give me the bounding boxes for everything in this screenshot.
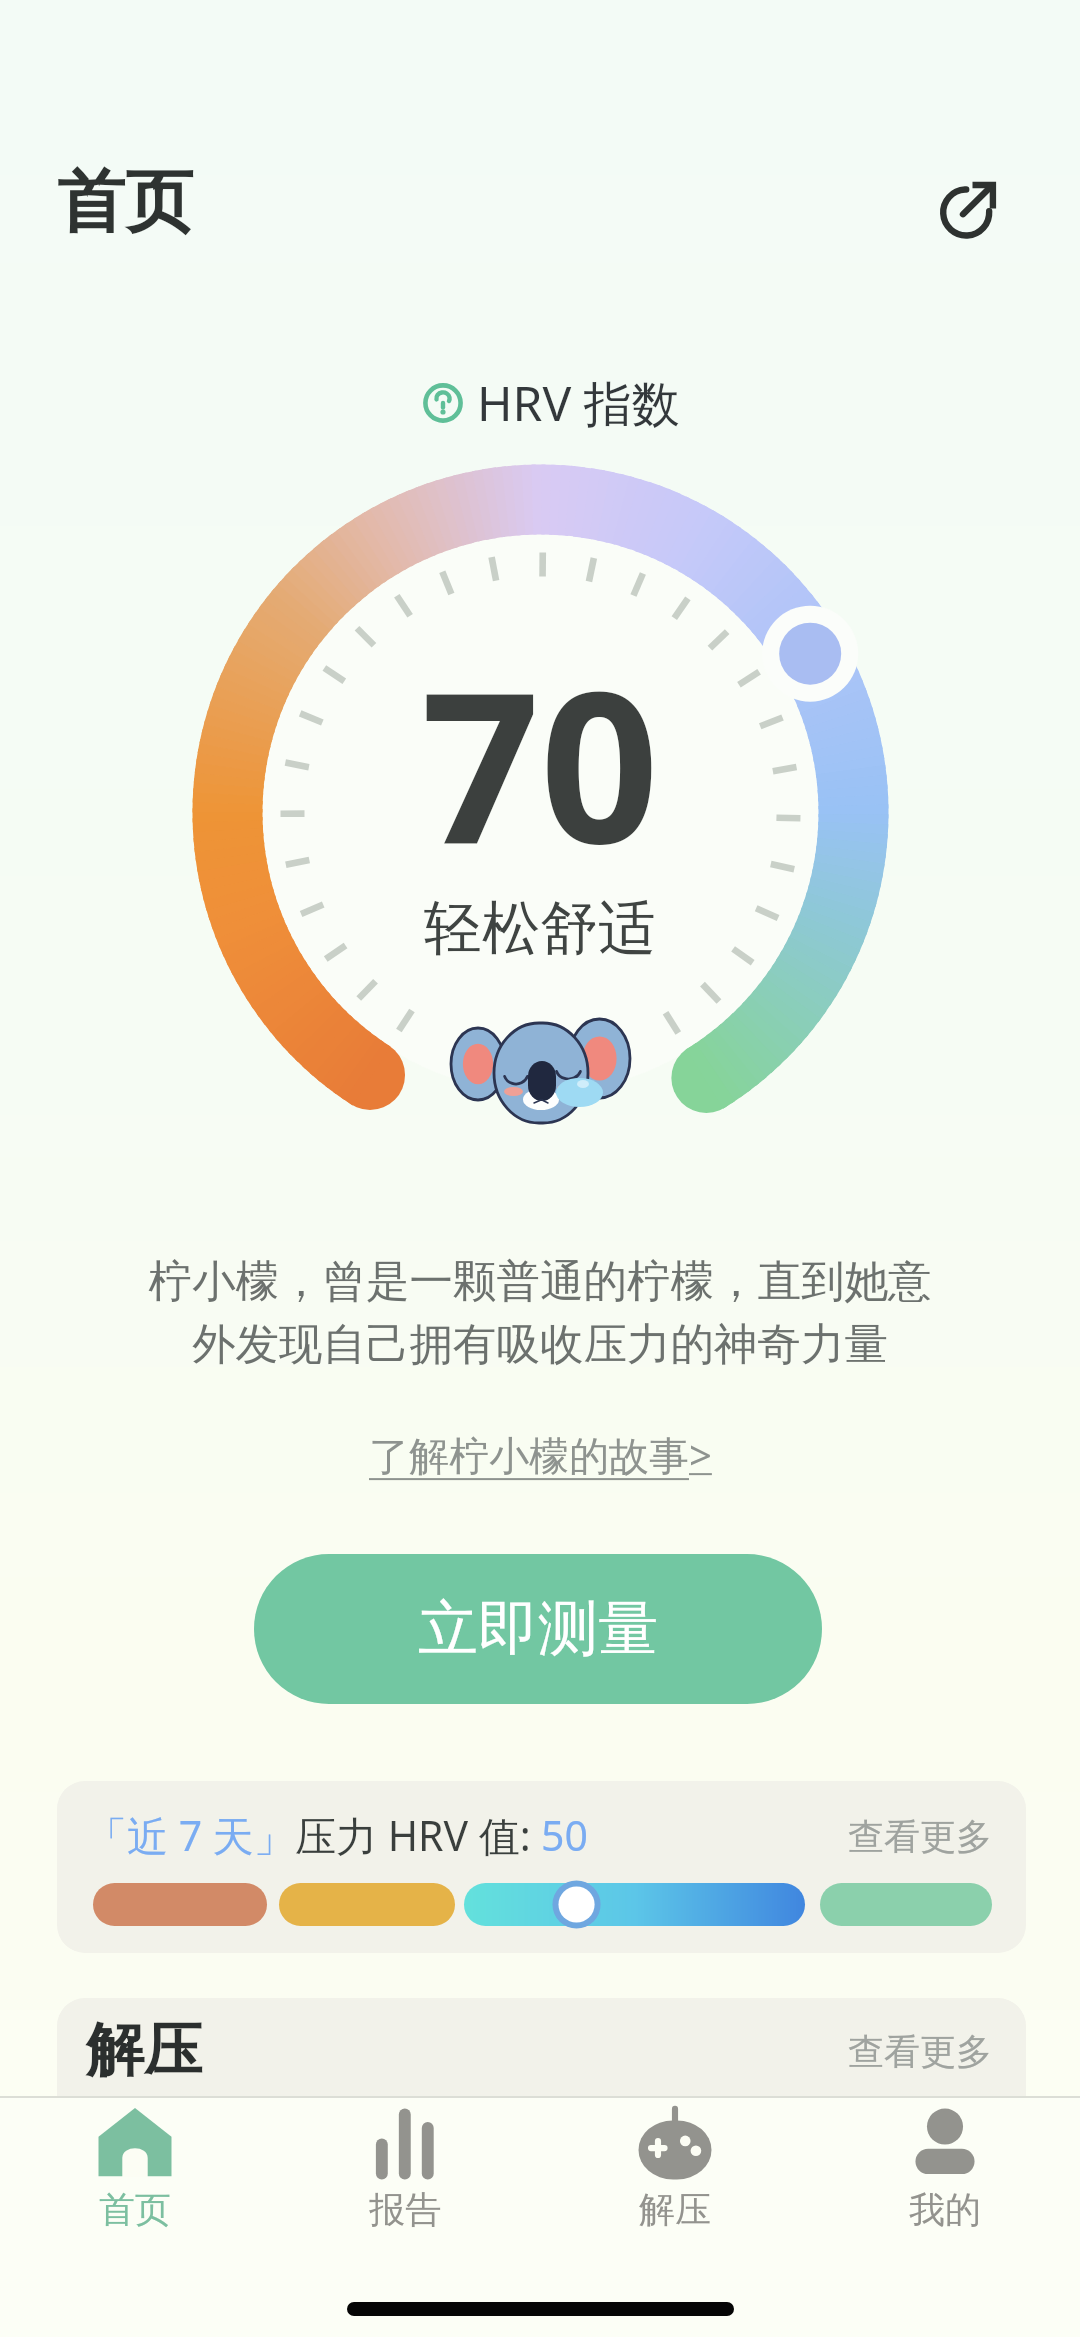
staticText: 查看更多 (848, 2029, 992, 2074)
staticText: 轻松舒适 (424, 892, 656, 965)
staticText: 立即测量 (418, 1591, 658, 1667)
button[interactable]: 首页 (57, 160, 193, 246)
button[interactable]: 我的 (810, 2096, 1080, 2266)
staticText: 解压 (639, 2187, 711, 2232)
button[interactable]: 首页 (0, 2096, 270, 2266)
staticText: 我的 (909, 2187, 981, 2232)
staticText: 50 (541, 1807, 588, 1863)
staticText: 柠小檬，曾是一颗普通的柠檬，直到她意 外发现自己拥有吸收压力的神奇力量 (0, 1254, 1080, 1372)
button[interactable]: 立即测量 (254, 1554, 822, 1704)
button[interactable]: 了解柠小檬的故事> (359, 1421, 722, 1488)
staticText: 查看更多 (848, 1814, 992, 1859)
button[interactable]: 「近 7 天」 (57, 1781, 1026, 1953)
staticText: 「近 7 天」 (86, 1807, 295, 1863)
staticText: 报告 (369, 2187, 441, 2232)
staticText: 解压 (86, 2014, 202, 2087)
button[interactable]: 报告 (270, 2096, 540, 2266)
staticText: 首页 (99, 2187, 171, 2232)
staticText: 压力 HRV 值: (295, 1807, 531, 1863)
button[interactable]: 解压 (57, 1998, 1026, 2158)
button[interactable]: 解压 (540, 2096, 810, 2266)
staticText: HRV 指数 (477, 370, 680, 436)
staticText: 首页 (57, 160, 193, 246)
button[interactable]: Share (933, 174, 1013, 254)
staticText: 70 (421, 621, 659, 904)
